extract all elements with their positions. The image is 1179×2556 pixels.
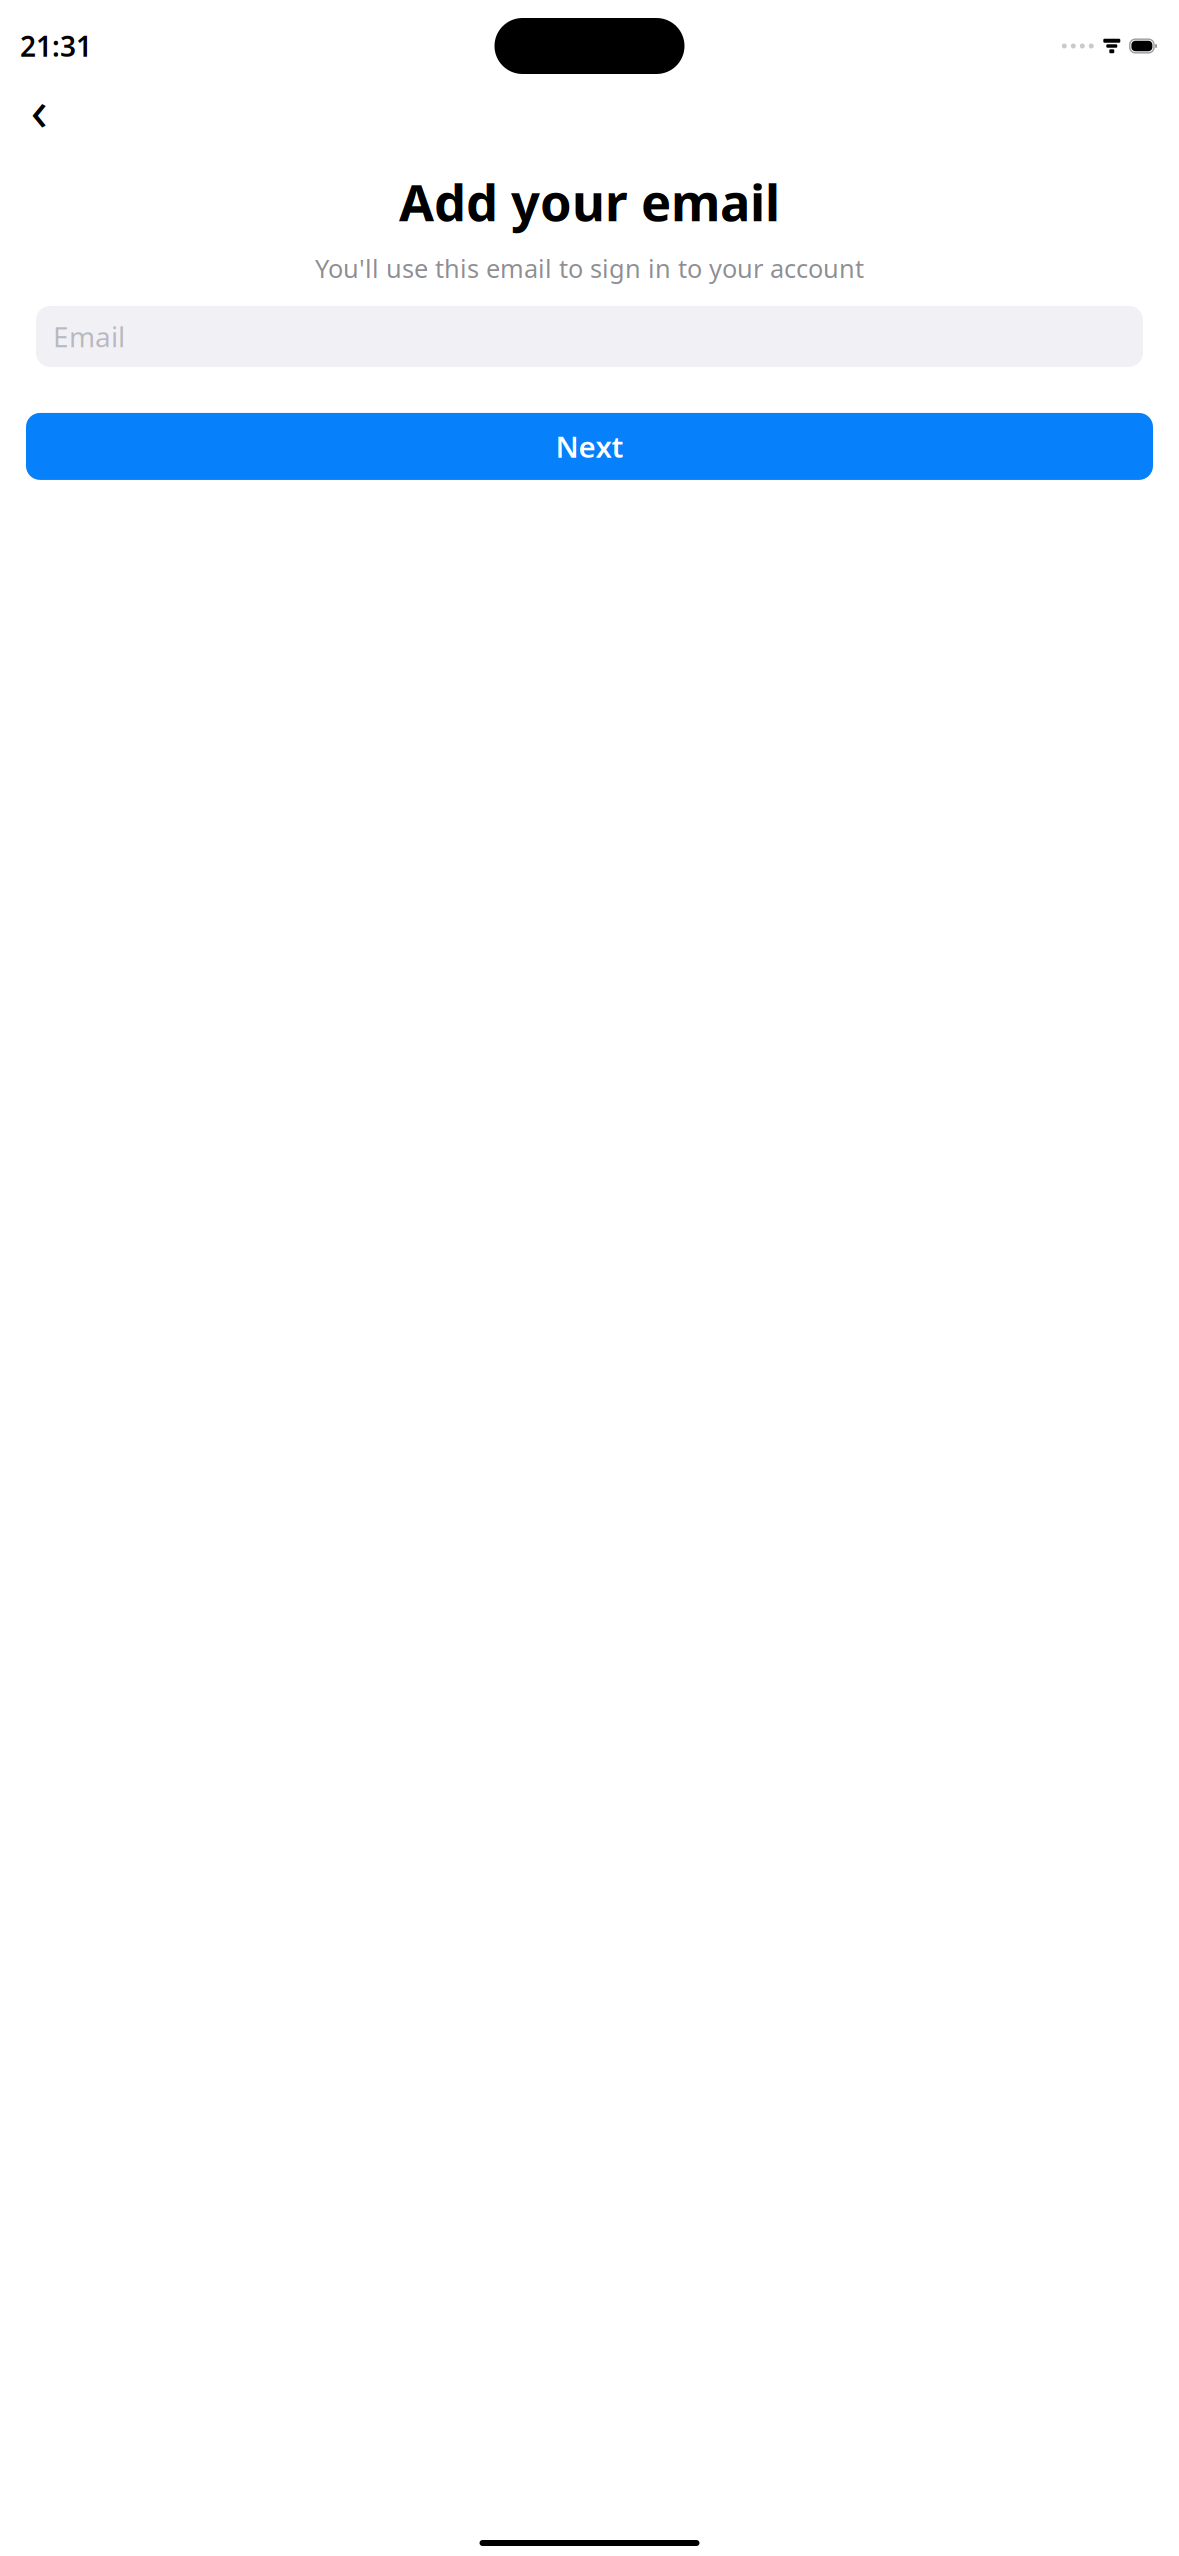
staticText: ‹ xyxy=(30,72,47,146)
staticText: 21:31 xyxy=(20,27,92,65)
button[interactable]: Email xyxy=(36,306,1143,367)
staticText: Email xyxy=(53,318,125,355)
button[interactable]: Back xyxy=(12,82,66,136)
staticText: Next xyxy=(555,427,623,466)
staticText: You'll use this email to sign in to your… xyxy=(315,251,864,285)
staticText: Add your email xyxy=(399,168,780,235)
button[interactable]: Next xyxy=(26,413,1153,480)
